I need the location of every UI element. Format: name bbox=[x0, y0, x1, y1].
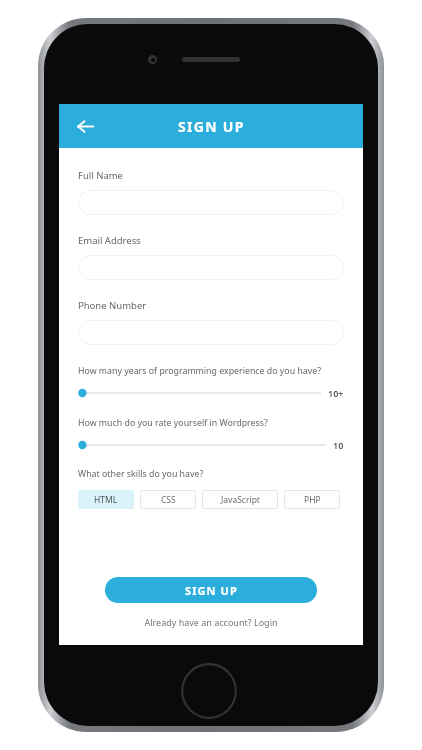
staticText: HTML bbox=[94, 494, 118, 506]
staticText: Email Address bbox=[78, 234, 141, 247]
staticText: What other skills do you have? bbox=[78, 468, 204, 480]
button[interactable]: Already have an account? Login bbox=[138, 614, 284, 630]
button[interactable]: HTML bbox=[78, 490, 134, 509]
staticText: PHP bbox=[304, 494, 321, 506]
button[interactable]: SIGN UP bbox=[105, 577, 317, 603]
staticText: 10+ bbox=[328, 387, 344, 399]
button[interactable]: PHP bbox=[284, 490, 340, 509]
button[interactable]: Back bbox=[70, 111, 100, 141]
staticText: JavaScript bbox=[221, 494, 260, 506]
staticText: How much do you rate yourself in Wordpre… bbox=[78, 417, 268, 429]
staticText: Already have an account? Login bbox=[144, 616, 278, 628]
button[interactable]: CSS bbox=[140, 490, 196, 509]
button[interactable]: Slider bbox=[78, 438, 326, 452]
staticText: 10 bbox=[333, 439, 344, 451]
staticText: CSS bbox=[161, 494, 176, 506]
button[interactable]: JavaScript bbox=[202, 490, 278, 509]
staticText: SIGN UP bbox=[185, 583, 238, 598]
button[interactable]: Text input bbox=[78, 190, 344, 215]
button[interactable]: Text input bbox=[78, 255, 344, 280]
button[interactable]: Slider bbox=[78, 386, 321, 400]
staticText: Phone Number bbox=[78, 299, 147, 312]
staticText: SIGN UP bbox=[178, 117, 245, 136]
button[interactable]: Text input bbox=[78, 320, 344, 345]
staticText: How many years of programming experience… bbox=[78, 365, 321, 377]
staticText: Full Name bbox=[78, 169, 123, 182]
